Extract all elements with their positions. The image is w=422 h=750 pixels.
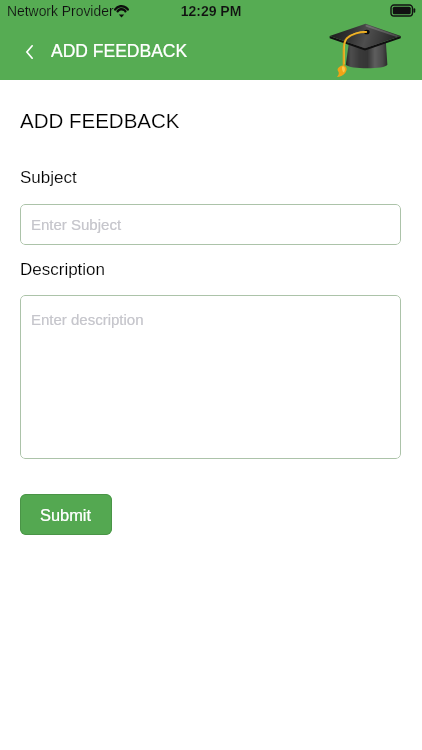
- button[interactable]: Enter description: [20, 295, 401, 459]
- staticText: Network Provider: [7, 3, 114, 19]
- staticText: Submit: [40, 506, 92, 524]
- button[interactable]: Submit: [20, 494, 112, 535]
- staticText: Enter Subject: [31, 216, 122, 233]
- button[interactable]: Back: [16, 38, 43, 65]
- staticText: Description: [20, 260, 106, 279]
- staticText: Subject: [20, 168, 77, 187]
- staticText: 12:29 PM: [0, 3, 422, 19]
- staticText: Enter description: [31, 311, 144, 328]
- button[interactable]: Enter Subject: [20, 204, 401, 245]
- staticText: ADD FEEDBACK: [20, 109, 180, 132]
- staticText: ADD FEEDBACK: [51, 41, 188, 61]
